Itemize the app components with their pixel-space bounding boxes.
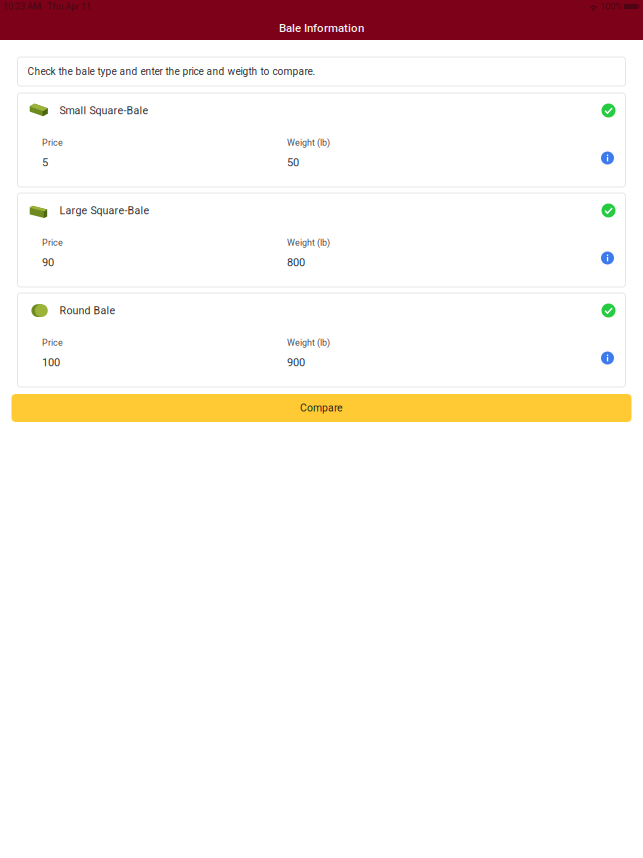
staticText: Weight (lb) <box>287 237 330 248</box>
staticText: 900 <box>287 356 305 369</box>
staticText: Price <box>42 337 63 348</box>
staticText: Thu Apr 11 <box>41 1 91 12</box>
staticText: Bale Information <box>279 21 364 35</box>
staticText: Compare <box>300 402 343 414</box>
staticText: 800 <box>287 256 305 269</box>
staticText: 90 <box>42 256 54 269</box>
staticText: 10:23 AM <box>3 1 41 12</box>
button[interactable]: More information <box>601 151 614 164</box>
staticText: Price <box>42 137 63 148</box>
staticText: Small Square-Bale <box>59 104 148 117</box>
button[interactable]: Compare <box>11 394 631 422</box>
staticText: Price <box>42 237 63 248</box>
staticText: Round Bale <box>59 304 115 317</box>
staticText: 100 <box>42 356 60 369</box>
staticText: 100% <box>598 1 624 12</box>
button[interactable]: Selected <box>601 103 615 117</box>
staticText: 5 <box>42 156 48 169</box>
staticText: Check the bale type and enter the price … <box>27 66 315 77</box>
button[interactable]: More information <box>601 351 614 364</box>
staticText: 50 <box>287 156 299 169</box>
staticText: Weight (lb) <box>287 137 330 148</box>
button[interactable]: Selected <box>601 303 615 317</box>
staticText: Large Square-Bale <box>59 204 149 217</box>
button[interactable]: More information <box>601 251 614 264</box>
staticText: Weight (lb) <box>287 337 330 348</box>
button[interactable]: Selected <box>601 203 615 217</box>
